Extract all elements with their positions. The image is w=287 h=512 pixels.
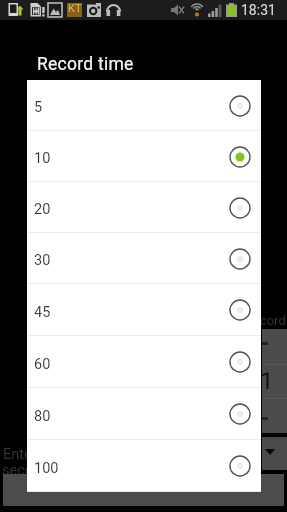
staticText: Record bbox=[245, 313, 286, 328]
button[interactable]: 20 bbox=[27, 182, 261, 233]
button[interactable]: 60 bbox=[27, 336, 261, 388]
button[interactable]: 45 bbox=[27, 284, 261, 336]
staticText: Record time bbox=[37, 54, 134, 75]
staticText: 5 bbox=[34, 99, 43, 116]
staticText: 100 bbox=[34, 460, 59, 477]
staticText: seconds to be used bbox=[2, 462, 128, 479]
staticText: 30 bbox=[34, 252, 51, 269]
staticText: 80 bbox=[34, 408, 51, 425]
staticText: KT bbox=[68, 2, 82, 15]
button[interactable]: 100 bbox=[27, 440, 261, 492]
button[interactable]: 80 bbox=[27, 388, 261, 440]
staticText: 60 bbox=[34, 356, 51, 373]
staticText: 20 bbox=[34, 201, 51, 218]
staticText: 45 bbox=[34, 304, 51, 321]
staticText: 18:31 bbox=[241, 2, 276, 18]
staticText: 10 bbox=[34, 150, 51, 167]
staticText: Enter the recording time in bbox=[3, 446, 173, 463]
button[interactable]: 30 bbox=[27, 233, 261, 284]
staticText: 1 bbox=[260, 367, 274, 395]
button[interactable]: 5 bbox=[27, 80, 261, 131]
button[interactable]: 10 bbox=[27, 131, 261, 182]
